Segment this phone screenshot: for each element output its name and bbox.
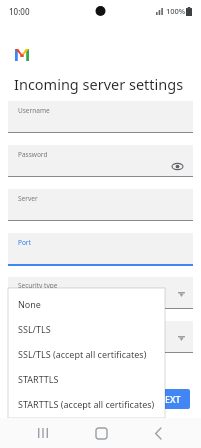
button[interactable]: Back xyxy=(143,418,173,448)
button[interactable]: SSL/TLS (accept all certificates) xyxy=(8,341,165,366)
button[interactable]: Home xyxy=(86,418,116,448)
staticText: 100% xyxy=(166,6,186,16)
button[interactable]: None xyxy=(8,291,165,316)
button[interactable]: Security type xyxy=(8,277,193,309)
staticText: 10:00 xyxy=(9,6,30,17)
staticText: Incoming server settings xyxy=(14,74,184,94)
staticText: SSL/TLS (accept all certificates) xyxy=(18,348,147,360)
button[interactable]: Open security type dropdown xyxy=(173,286,189,302)
staticText: STARTTLS xyxy=(18,373,59,385)
button[interactable]: Server xyxy=(8,189,193,221)
staticText: NEXT xyxy=(158,393,181,405)
staticText: Username xyxy=(18,106,50,115)
staticText: None xyxy=(18,298,41,310)
button[interactable]: SSL/TLS xyxy=(8,316,165,341)
button[interactable]: Recent apps xyxy=(28,418,58,448)
button[interactable]: STARTTLS (accept all certificates) xyxy=(8,391,165,416)
button[interactable]: Password xyxy=(8,145,193,177)
button[interactable]: NEXT xyxy=(148,389,190,409)
button[interactable]: Show password xyxy=(169,158,185,174)
button[interactable]: Open authentication dropdown xyxy=(173,330,189,346)
staticText: SSL/TLS xyxy=(18,323,51,335)
staticText: Security type xyxy=(18,281,58,290)
staticText: STARTTLS (accept all certificates) xyxy=(18,398,155,410)
staticText: Password xyxy=(18,150,48,159)
staticText: Server xyxy=(18,194,38,203)
button[interactable]: Port xyxy=(8,233,193,265)
button[interactable]: STARTTLS xyxy=(8,366,165,391)
staticText: Port xyxy=(18,238,31,247)
button[interactable]: Username xyxy=(8,101,193,133)
button[interactable] xyxy=(8,321,193,353)
